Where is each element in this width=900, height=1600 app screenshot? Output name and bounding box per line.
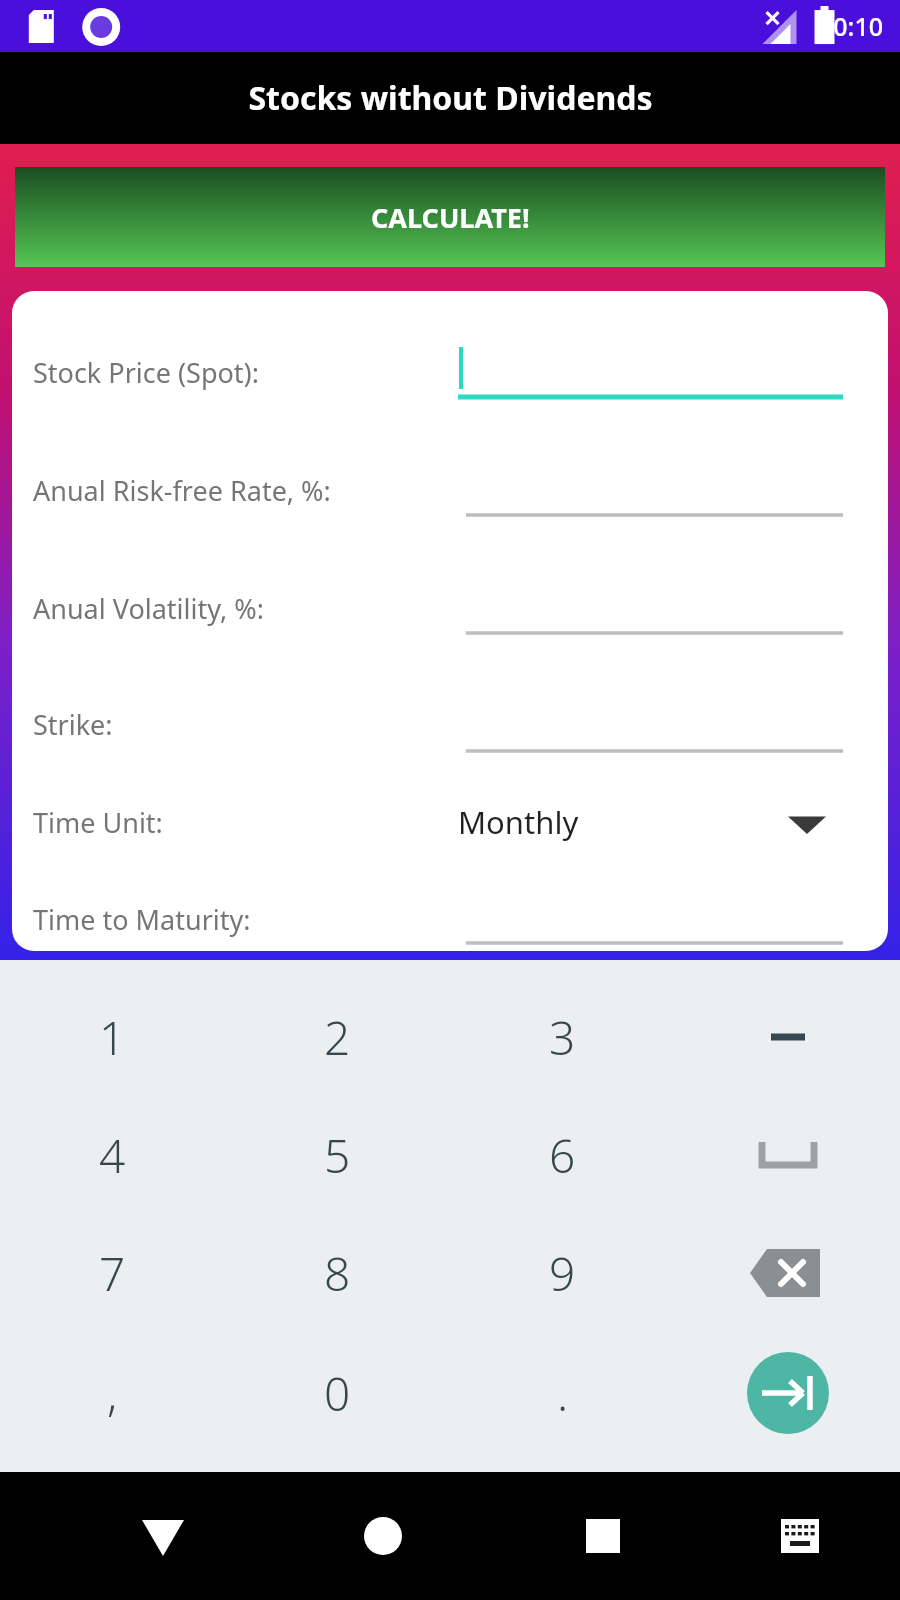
button[interactable]: 6 (450, 1096, 675, 1214)
staticText: . (557, 1362, 569, 1425)
staticText: Anual Volatility, %: (33, 590, 264, 627)
button[interactable]: Time Unit: (12, 786, 888, 858)
staticText: 10:10 (819, 9, 884, 43)
button[interactable]: Anual Volatility, %: (12, 575, 888, 641)
staticText: Stocks without Dividends (248, 76, 653, 120)
button[interactable]: . (450, 1332, 675, 1454)
button[interactable]: Minus (675, 978, 900, 1096)
button[interactable]: 9 (450, 1214, 675, 1332)
button[interactable]: CALCULATE! (15, 167, 885, 267)
button[interactable]: 1 (0, 978, 225, 1096)
staticText: 0 (324, 1362, 351, 1425)
staticText: 5 (324, 1124, 351, 1187)
staticText: 6 (549, 1124, 576, 1187)
button[interactable]: 7 (0, 1214, 225, 1332)
button[interactable]: Time to Maturity: (12, 886, 888, 951)
staticText: Anual Risk-free Rate, %: (33, 472, 331, 509)
staticText: Monthly (458, 801, 579, 843)
button[interactable]: Switch keyboard (755, 1491, 845, 1581)
button[interactable]: Space (675, 1096, 900, 1214)
staticText: 9 (549, 1242, 576, 1305)
staticText: 2 (324, 1006, 351, 1069)
button[interactable]: 3 (450, 978, 675, 1096)
button[interactable]: Recent apps (558, 1491, 648, 1581)
button[interactable]: Anual Risk-free Rate, %: (12, 457, 888, 523)
button[interactable]: Home (338, 1491, 428, 1581)
button[interactable]: Stock Price (Spot): (12, 339, 888, 405)
button[interactable]: 5 (225, 1096, 450, 1214)
staticText: , (107, 1362, 118, 1425)
staticText: Stock Price (Spot): (33, 354, 259, 391)
button[interactable]: 0 (225, 1332, 450, 1454)
button[interactable]: Next (675, 1332, 900, 1454)
button[interactable]: Back (118, 1491, 208, 1581)
staticText: 7 (99, 1242, 126, 1305)
staticText: Strike: (33, 706, 113, 743)
button[interactable]: 4 (0, 1096, 225, 1214)
staticText: Time Unit: (33, 804, 163, 841)
staticText: 8 (324, 1242, 351, 1305)
button[interactable]: 2 (225, 978, 450, 1096)
button[interactable]: , (0, 1332, 225, 1454)
staticText: CALCULATE! (371, 199, 530, 236)
button[interactable]: Backspace (675, 1214, 900, 1332)
staticText: 1 (99, 1006, 126, 1069)
staticText: Time to Maturity: (33, 901, 251, 938)
staticText: 3 (549, 1006, 576, 1069)
button[interactable]: Strike: (12, 691, 888, 757)
button[interactable]: 8 (225, 1214, 450, 1332)
staticText: 4 (99, 1124, 126, 1187)
